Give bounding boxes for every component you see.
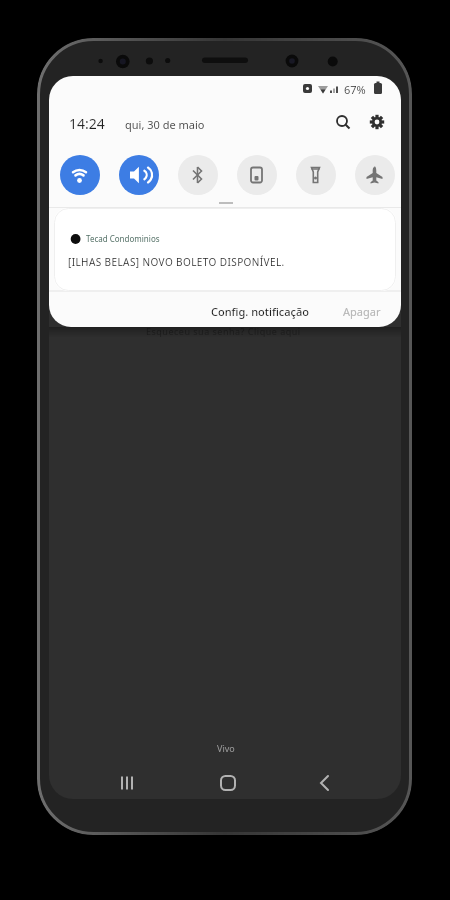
staticText: Apagar (343, 304, 381, 319)
button[interactable] (60, 155, 100, 195)
button[interactable] (332, 112, 353, 133)
button[interactable] (178, 155, 218, 195)
button[interactable] (310, 769, 338, 797)
staticText: Vivo (217, 742, 235, 754)
button[interactable] (355, 155, 395, 195)
button[interactable]: Apagar (337, 297, 387, 325)
staticText: [ILHAS BELAS] NOVO BOLETO DISPONÍVEL. (68, 255, 285, 269)
staticText: 14:24 (69, 114, 105, 133)
button[interactable] (366, 112, 387, 133)
button[interactable] (119, 155, 159, 195)
staticText: 67% (344, 82, 366, 97)
staticText: qui, 30 de maio (125, 117, 205, 132)
button[interactable] (214, 769, 242, 797)
button[interactable] (296, 155, 336, 195)
staticText: Tecad Condominios (86, 233, 160, 244)
staticText: Config. notificação (211, 304, 309, 319)
staticText: Esqueceu sua senha? Clique aqui (146, 325, 301, 337)
button[interactable]: Config. notificação (199, 297, 321, 325)
button[interactable] (113, 769, 141, 797)
button[interactable] (237, 155, 277, 195)
button[interactable]: Tecad Condominios (54, 208, 396, 291)
